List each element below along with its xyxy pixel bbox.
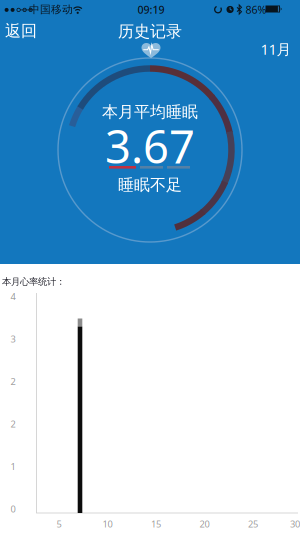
staticText: 历史记录 xyxy=(118,22,182,41)
staticText: 2 xyxy=(10,375,15,388)
staticText: 10 xyxy=(102,518,112,530)
button[interactable]: 11月 xyxy=(260,39,291,59)
staticText: 86% xyxy=(245,2,266,17)
staticText: 09:19 xyxy=(137,2,164,17)
staticText: 本月平均睡眠 xyxy=(102,102,198,122)
staticText: 20 xyxy=(199,518,209,530)
staticText: 本月心率统计： xyxy=(2,276,65,287)
staticText: 11月 xyxy=(260,39,291,59)
staticText: 返回 xyxy=(5,21,37,41)
staticText: 25 xyxy=(248,518,258,530)
staticText: 1 xyxy=(10,460,15,473)
staticText: 3.67 xyxy=(105,116,195,176)
staticText: 30 xyxy=(290,518,300,530)
staticText: 15 xyxy=(151,518,161,530)
staticText: 中国移动 xyxy=(29,3,73,16)
staticText: 0 xyxy=(10,503,15,515)
staticText: 2 xyxy=(10,418,15,430)
staticText: 3 xyxy=(10,333,15,345)
button[interactable]: 返回 xyxy=(5,21,37,41)
staticText: 睡眠不足 xyxy=(118,175,182,195)
staticText: 5 xyxy=(56,518,61,530)
staticText: 4 xyxy=(10,290,15,303)
